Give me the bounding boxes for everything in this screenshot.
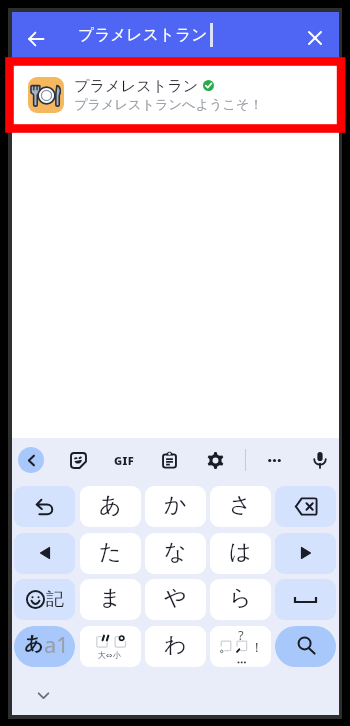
staticText: ま: [99, 584, 122, 612]
button[interactable]: ?: [210, 626, 271, 667]
button[interactable]: わ: [145, 626, 206, 667]
staticText: !: [255, 638, 259, 656]
button[interactable]: Voice input: [304, 444, 336, 476]
button[interactable]: た: [80, 533, 141, 574]
button[interactable]: か: [145, 486, 206, 527]
button[interactable]: プラメレストラン: [12, 58, 339, 134]
button[interactable]: あ: [14, 626, 75, 667]
staticText: あ: [24, 632, 44, 656]
staticText: ?: [238, 626, 244, 644]
button[interactable]: [275, 626, 336, 667]
button[interactable]: [275, 579, 336, 620]
button[interactable]: Back: [16, 19, 56, 59]
staticText: GIF: [114, 453, 135, 468]
button[interactable]: 記: [14, 579, 75, 620]
staticText: プラメレストランへようこそ！: [74, 96, 263, 113]
button[interactable]: さ: [210, 486, 271, 527]
staticText: プラメレストラン: [74, 76, 199, 95]
button[interactable]: Settings: [199, 444, 231, 476]
staticText: か: [164, 491, 187, 519]
button[interactable]: [14, 533, 75, 574]
staticText: プラメレストラン: [78, 25, 208, 45]
button[interactable]: [275, 533, 336, 574]
staticText: わ: [164, 631, 187, 659]
button[interactable]: GIF: [108, 444, 140, 476]
staticText: や: [164, 584, 187, 612]
staticText: あ: [99, 491, 122, 519]
button[interactable]: 大⇔小: [80, 626, 141, 667]
staticText: ら: [229, 584, 252, 612]
staticText: 大⇔小: [98, 650, 121, 660]
button[interactable]: や: [145, 579, 206, 620]
button[interactable]: な: [145, 533, 206, 574]
button[interactable]: あ: [80, 486, 141, 527]
button[interactable]: Hide keyboard: [27, 679, 59, 711]
button[interactable]: More options: [258, 444, 290, 476]
button[interactable]: Clipboard: [153, 444, 185, 476]
staticText: a1: [44, 629, 69, 659]
staticText: な: [164, 538, 187, 566]
staticText: さ: [229, 491, 252, 519]
staticText: 記: [46, 588, 64, 611]
button[interactable]: [275, 486, 336, 527]
button[interactable]: Stickers: [62, 444, 94, 476]
button[interactable]: は: [210, 533, 271, 574]
button[interactable]: ま: [80, 579, 141, 620]
staticText: た: [99, 538, 122, 566]
button[interactable]: ら: [210, 579, 271, 620]
button[interactable]: Previous: [18, 447, 44, 473]
staticText: は: [229, 538, 252, 566]
button[interactable]: Clear query: [297, 20, 333, 56]
button[interactable]: [14, 486, 75, 527]
